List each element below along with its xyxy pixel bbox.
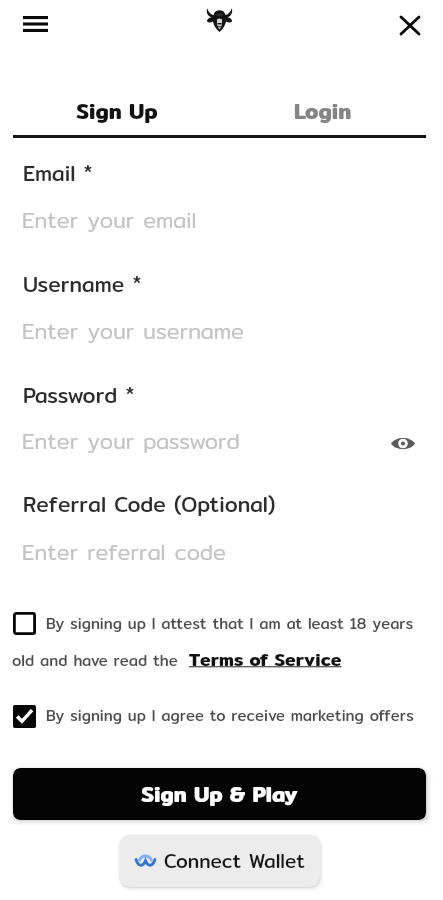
button[interactable]: Login	[220, 91, 426, 131]
button[interactable]: Open menu	[7, 3, 67, 45]
staticText: old and have read the	[12, 649, 189, 673]
staticText: Referral Code (Optional)	[23, 488, 276, 521]
staticText: Enter your username	[22, 314, 245, 348]
button[interactable]: Sign Up & Play	[13, 768, 426, 820]
staticText: Connect Wallet	[164, 846, 306, 876]
staticText: Login	[294, 94, 352, 128]
staticText: Sign Up	[76, 94, 158, 128]
staticText: Username *	[23, 268, 142, 301]
button[interactable]: By signing up I attest that I am at leas…	[13, 608, 415, 632]
staticText: By signing up I attest that I am at leas…	[46, 612, 414, 636]
button[interactable]: Close	[382, 3, 438, 45]
staticText: Enter your email	[22, 203, 197, 237]
staticText: Email *	[23, 157, 93, 190]
button[interactable]: Connect Wallet	[120, 835, 320, 887]
staticText: Sign Up & Play	[141, 777, 298, 811]
staticText: Password *	[23, 379, 135, 412]
button[interactable]: By signing up I agree to receive marketi…	[13, 704, 423, 728]
button[interactable]: Terms of Service	[189, 645, 342, 673]
button[interactable]: Show password	[389, 429, 417, 457]
staticText: Enter referral code	[22, 535, 226, 569]
staticText: By signing up I agree to receive marketi…	[46, 704, 414, 728]
staticText: Enter your password	[22, 424, 240, 458]
button[interactable]: Sign Up	[14, 91, 220, 131]
